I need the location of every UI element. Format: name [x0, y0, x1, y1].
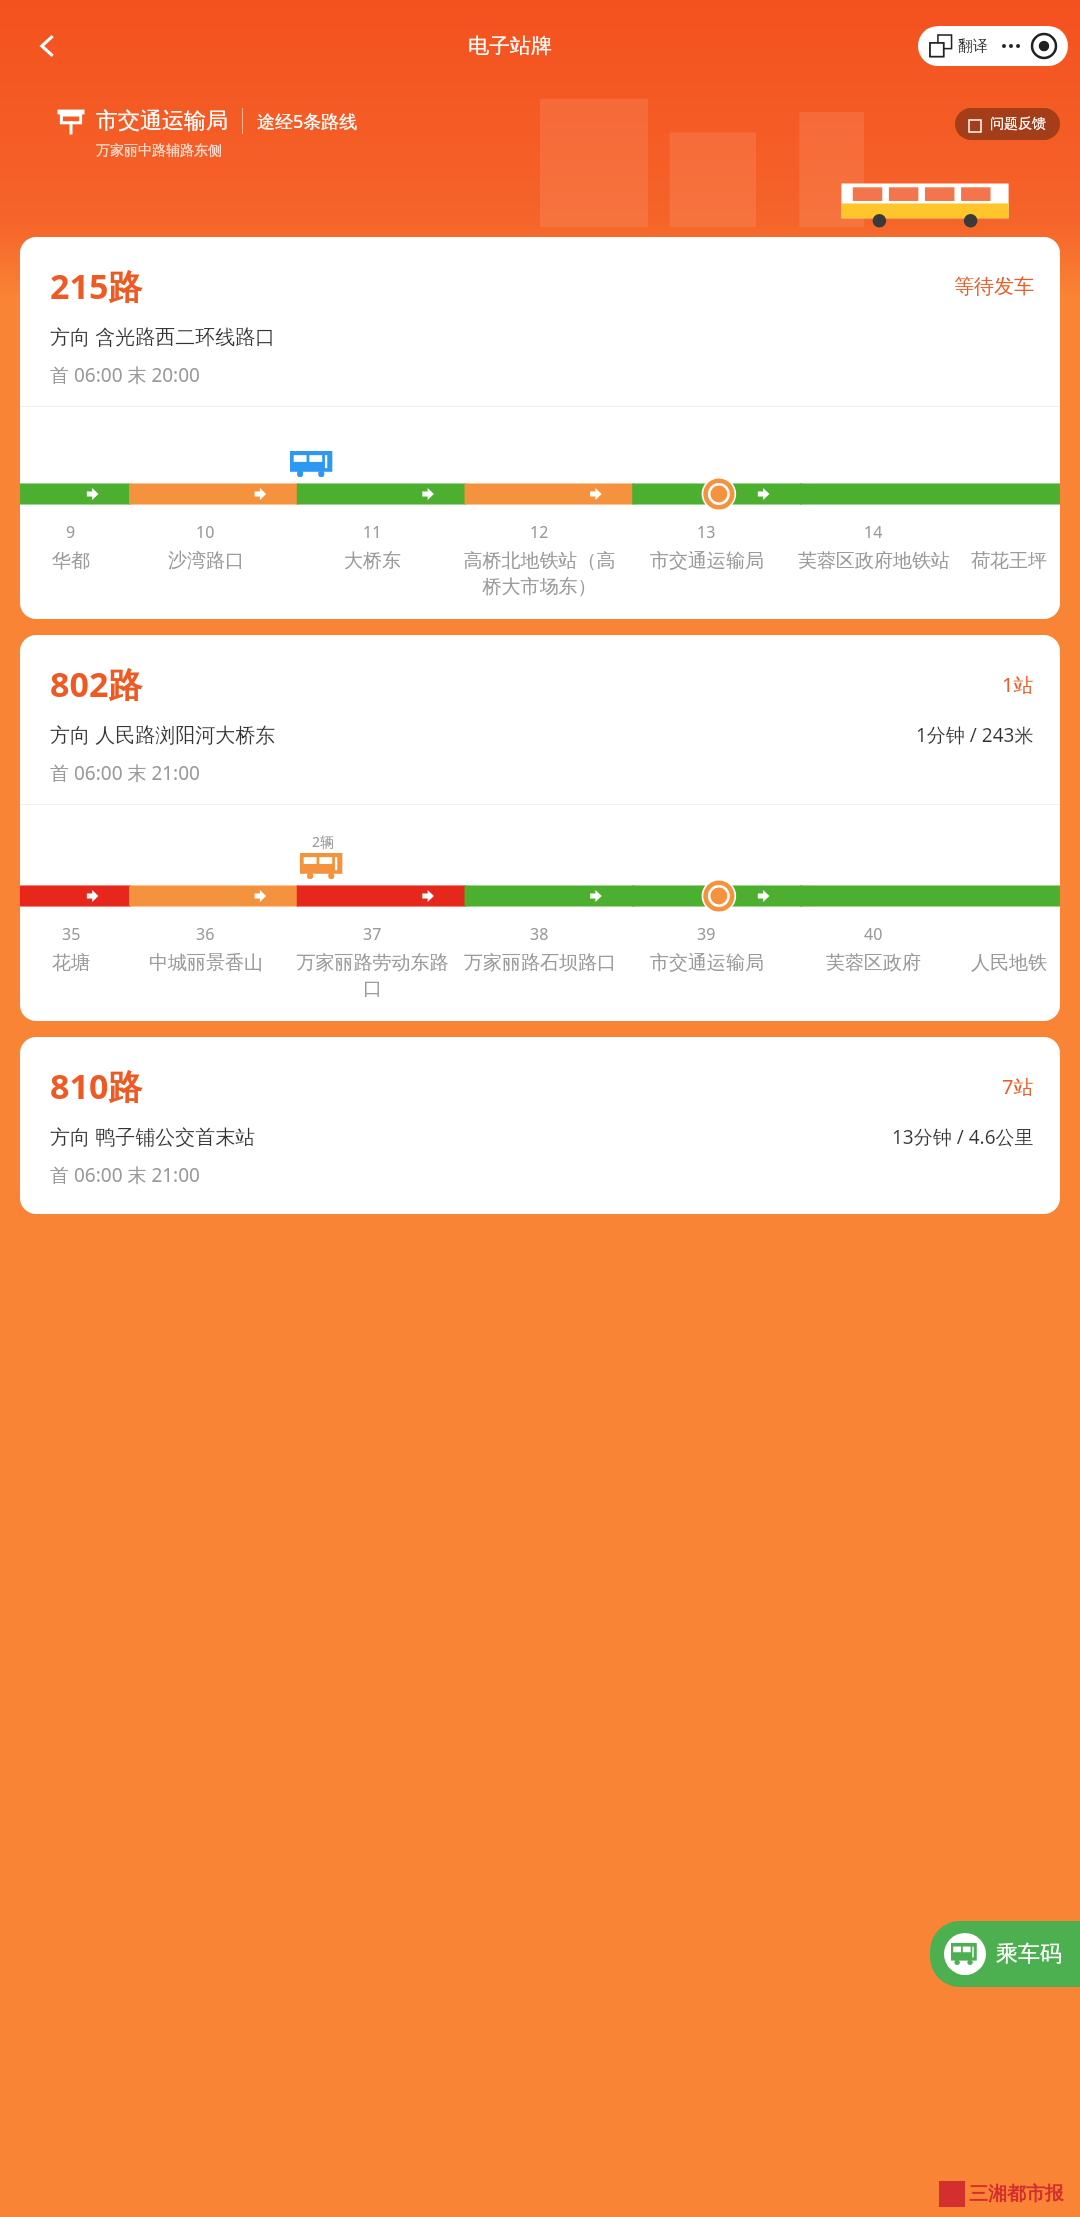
staticText: 1站 — [1002, 671, 1034, 698]
button[interactable]: Close — [1032, 34, 1056, 58]
staticText: 芙蓉区政府地铁站 — [798, 549, 950, 573]
staticText: 2辆 — [312, 832, 335, 851]
staticText: 高桥北地铁站（高桥大市场东） — [456, 549, 623, 599]
staticText: 方向 人民路浏阳河大桥东 — [50, 721, 276, 748]
staticText: 问题反馈 — [990, 115, 1046, 133]
staticText: 翻译 — [958, 37, 988, 56]
button[interactable]: 乘车码 — [930, 1921, 1080, 1987]
staticText: 13 — [697, 521, 716, 543]
staticText: 人民地铁 — [971, 951, 1047, 975]
staticText: 9 — [66, 521, 76, 543]
staticText: 7站 — [1002, 1073, 1034, 1100]
button[interactable]: Back — [20, 18, 76, 74]
button[interactable]: 215路 — [20, 237, 1060, 619]
staticText: 市交通运输局 — [650, 549, 764, 573]
staticText: 方向 含光路西二环线路口 — [50, 323, 276, 350]
staticText: 首 06:00 末 20:00 — [50, 362, 200, 388]
button[interactable]: More options — [1000, 35, 1022, 57]
staticText: 10 — [196, 521, 215, 543]
staticText: 首 06:00 末 21:00 — [50, 760, 200, 786]
staticText: 大桥东 — [344, 549, 401, 573]
staticText: 万家丽路石坝路口 — [464, 951, 616, 975]
staticText: 215路 — [50, 263, 143, 309]
staticText: 华都 — [52, 549, 90, 573]
staticText: 14 — [864, 521, 883, 543]
staticText: 等待发车 — [954, 274, 1034, 299]
staticText: 芙蓉区政府 — [826, 951, 921, 975]
staticText: 810路 — [50, 1063, 143, 1109]
staticText: 荷花王坪 — [971, 549, 1047, 573]
staticText: 35 — [62, 923, 81, 945]
staticText: 三湘都市报 — [969, 2182, 1064, 2206]
staticText: 1分钟 / 243米 — [916, 722, 1034, 748]
staticText: 40 — [864, 923, 883, 945]
staticText: 39 — [697, 923, 716, 945]
button[interactable]: 810路 — [20, 1037, 1060, 1214]
staticText: 万家丽中路辅路东侧 — [96, 142, 222, 160]
staticText: 市交通运输局 — [96, 107, 228, 135]
staticText: 万家丽路劳动东路口 — [289, 951, 456, 1001]
staticText: 13分钟 / 4.6公里 — [892, 1124, 1034, 1150]
staticText: 首 06:00 末 21:00 — [50, 1162, 200, 1188]
button[interactable]: 问题反馈 — [955, 108, 1060, 140]
staticText: 市交通运输局 — [650, 951, 764, 975]
staticText: 12 — [530, 521, 549, 543]
staticText: 36 — [196, 923, 215, 945]
staticText: 电子站牌 — [468, 33, 552, 59]
staticText: 11 — [363, 521, 382, 543]
staticText: 乘车码 — [996, 1940, 1062, 1968]
button[interactable]: 翻译 — [918, 26, 1068, 66]
staticText: 途经5条路线 — [257, 109, 358, 134]
staticText: 沙湾路口 — [168, 549, 244, 573]
staticText: 37 — [363, 923, 382, 945]
staticText: 38 — [530, 923, 549, 945]
staticText: 中城丽景香山 — [149, 951, 263, 975]
staticText: 802路 — [50, 661, 143, 707]
staticText: 方向 鸭子铺公交首末站 — [50, 1123, 256, 1150]
button[interactable]: 802路 — [20, 635, 1060, 1021]
staticText: 花塘 — [52, 951, 90, 975]
